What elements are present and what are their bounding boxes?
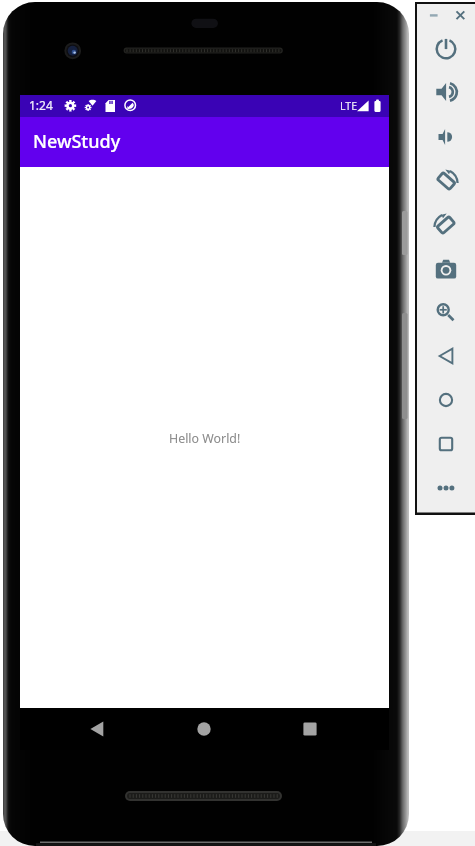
button[interactable]: Minimise: [425, 7, 447, 26]
button[interactable]: Power: [428, 31, 464, 67]
button[interactable]: More: [428, 470, 464, 506]
button[interactable]: Volume up: [428, 74, 464, 110]
button[interactable]: Recent apps: [287, 714, 333, 744]
button[interactable]: NewStudy: [20, 117, 389, 167]
button[interactable]: Rotate right: [428, 207, 464, 243]
button[interactable]: Rotate left: [428, 163, 464, 199]
button[interactable]: Close: [450, 7, 471, 26]
staticText: LTE: [340, 99, 357, 113]
staticText: NewStudy: [33, 129, 121, 154]
button[interactable]: Recent apps: [428, 426, 464, 462]
staticText: 1:24: [29, 97, 53, 113]
button[interactable]: Take screenshot: [428, 251, 464, 287]
staticText: Hello World!: [169, 430, 241, 447]
button[interactable]: Back: [77, 714, 123, 744]
button[interactable]: Zoom: [428, 292, 464, 328]
button[interactable]: Home: [428, 382, 464, 418]
button[interactable]: Home: [181, 714, 227, 744]
button[interactable]: Volume down: [428, 119, 464, 155]
button[interactable]: Back: [428, 338, 464, 374]
